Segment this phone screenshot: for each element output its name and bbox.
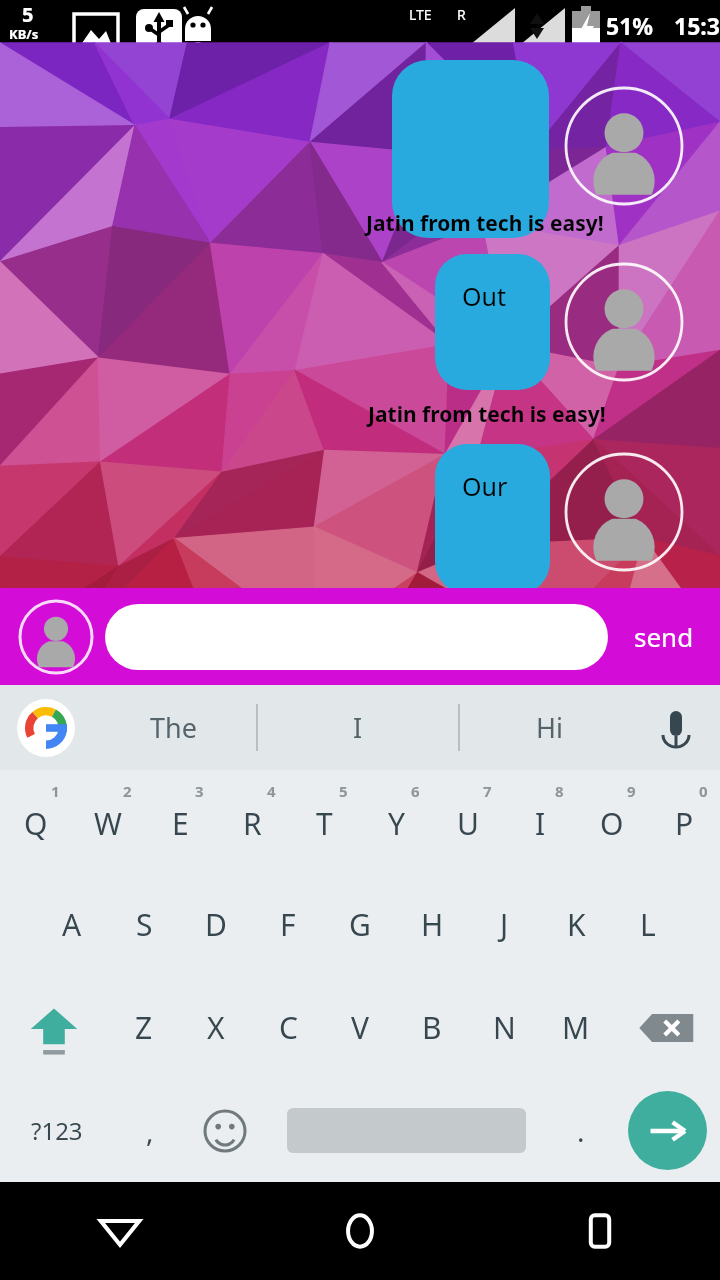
button[interactable]: Emoji — [186, 1079, 264, 1182]
staticText: K — [567, 904, 586, 945]
staticText: R — [457, 5, 466, 24]
button[interactable]: Y — [360, 770, 432, 873]
staticText: M — [562, 1007, 590, 1048]
staticText: Z — [135, 1007, 153, 1048]
staticText: ?123 — [31, 1114, 83, 1147]
button[interactable]: U — [432, 770, 504, 873]
staticText: N — [493, 1007, 516, 1048]
button[interactable]: Backspace — [612, 976, 720, 1079]
staticText: 7 — [483, 781, 492, 801]
staticText: 4 — [267, 781, 276, 801]
button[interactable]: W — [72, 770, 144, 873]
button[interactable]: Profile — [18, 599, 94, 675]
button[interactable]: V — [324, 976, 396, 1079]
button[interactable]: M — [540, 976, 612, 1079]
staticText: Q — [24, 803, 48, 844]
staticText: 51% — [606, 10, 654, 41]
button[interactable]: , — [114, 1079, 186, 1182]
staticText: 0 — [699, 781, 708, 801]
button[interactable]: Back — [0, 61, 64, 125]
button[interactable]: Home — [240, 1182, 480, 1280]
staticText: U — [457, 803, 479, 844]
button[interactable]: Shift — [0, 976, 108, 1079]
button[interactable]: A — [36, 873, 108, 976]
staticText: Our — [462, 469, 508, 503]
staticText: D — [205, 904, 227, 945]
staticText: KB/s — [9, 25, 39, 43]
staticText: 9 — [627, 781, 636, 801]
button[interactable]: Hi — [459, 685, 639, 770]
staticText: I — [353, 709, 363, 746]
staticText: , — [146, 1112, 154, 1150]
button[interactable]: The — [90, 685, 257, 770]
staticText: W — [94, 803, 122, 844]
staticText: A — [62, 904, 82, 945]
button[interactable]: N — [468, 976, 540, 1079]
staticText: 5 — [339, 781, 348, 801]
staticText: 8 — [555, 781, 564, 801]
button[interactable]: ?123 — [0, 1079, 114, 1182]
staticText: 3 — [195, 781, 204, 801]
staticText: E — [172, 803, 189, 844]
staticText: S — [136, 904, 153, 945]
staticText: R — [243, 803, 262, 844]
button[interactable]: . — [548, 1079, 614, 1182]
button[interactable]: Z — [108, 976, 180, 1079]
staticText: . — [577, 1112, 585, 1150]
button[interactable] — [105, 604, 608, 670]
staticText: Y — [388, 803, 405, 844]
staticText: C — [279, 1007, 298, 1048]
staticText: O — [600, 803, 624, 844]
button[interactable]: J — [468, 873, 540, 976]
staticText: X — [207, 1007, 225, 1048]
button[interactable]: R — [216, 770, 288, 873]
button[interactable]: send — [608, 588, 720, 685]
button[interactable]: P — [648, 770, 720, 873]
button[interactable]: X — [180, 976, 252, 1079]
button[interactable]: S — [108, 873, 180, 976]
staticText: I — [535, 803, 546, 844]
button[interactable]: O — [576, 770, 648, 873]
staticText: T — [316, 803, 333, 844]
button[interactable]: More options — [656, 61, 720, 125]
staticText: B — [422, 1007, 442, 1048]
button[interactable]: Voice input — [646, 698, 706, 758]
button[interactable]: G — [324, 873, 396, 976]
button[interactable]: B — [396, 976, 468, 1079]
button[interactable]: T — [288, 770, 360, 873]
button[interactable]: I — [504, 770, 576, 873]
button[interactable]: Space — [264, 1079, 548, 1182]
staticText: send — [634, 619, 694, 654]
button[interactable]: E — [144, 770, 216, 873]
staticText: 6 — [411, 781, 420, 801]
button[interactable]: Back — [0, 1182, 240, 1280]
button[interactable]: Enter — [614, 1079, 720, 1182]
staticText: 5 — [22, 1, 34, 28]
button[interactable]: D — [180, 873, 252, 976]
staticText: Jatin from tech is easy! — [368, 400, 606, 429]
staticText: J — [500, 904, 509, 945]
staticText: Jatin from tech is easy! — [366, 209, 604, 238]
staticText: 2 — [123, 781, 132, 801]
staticText: P — [675, 803, 694, 844]
staticText: The — [150, 709, 197, 746]
button[interactable]: L — [612, 873, 684, 976]
button[interactable]: C — [252, 976, 324, 1079]
button[interactable]: H — [396, 873, 468, 976]
button[interactable]: Google — [17, 699, 75, 757]
staticText: F — [280, 904, 296, 945]
button[interactable]: Q — [0, 770, 72, 873]
staticText: 1 — [51, 781, 60, 801]
staticText: G — [349, 904, 371, 945]
staticText: L — [640, 904, 656, 945]
staticText: 15:35 — [674, 10, 720, 48]
button[interactable]: F — [252, 873, 324, 976]
button[interactable]: K — [540, 873, 612, 976]
button[interactable]: I — [257, 685, 459, 770]
staticText: chat with experts — [229, 73, 491, 114]
staticText: LTE — [409, 5, 432, 24]
staticText: H — [421, 904, 444, 945]
staticText: Hi — [536, 709, 563, 746]
staticText: Out — [462, 279, 507, 313]
button[interactable]: Recent apps — [480, 1182, 720, 1280]
